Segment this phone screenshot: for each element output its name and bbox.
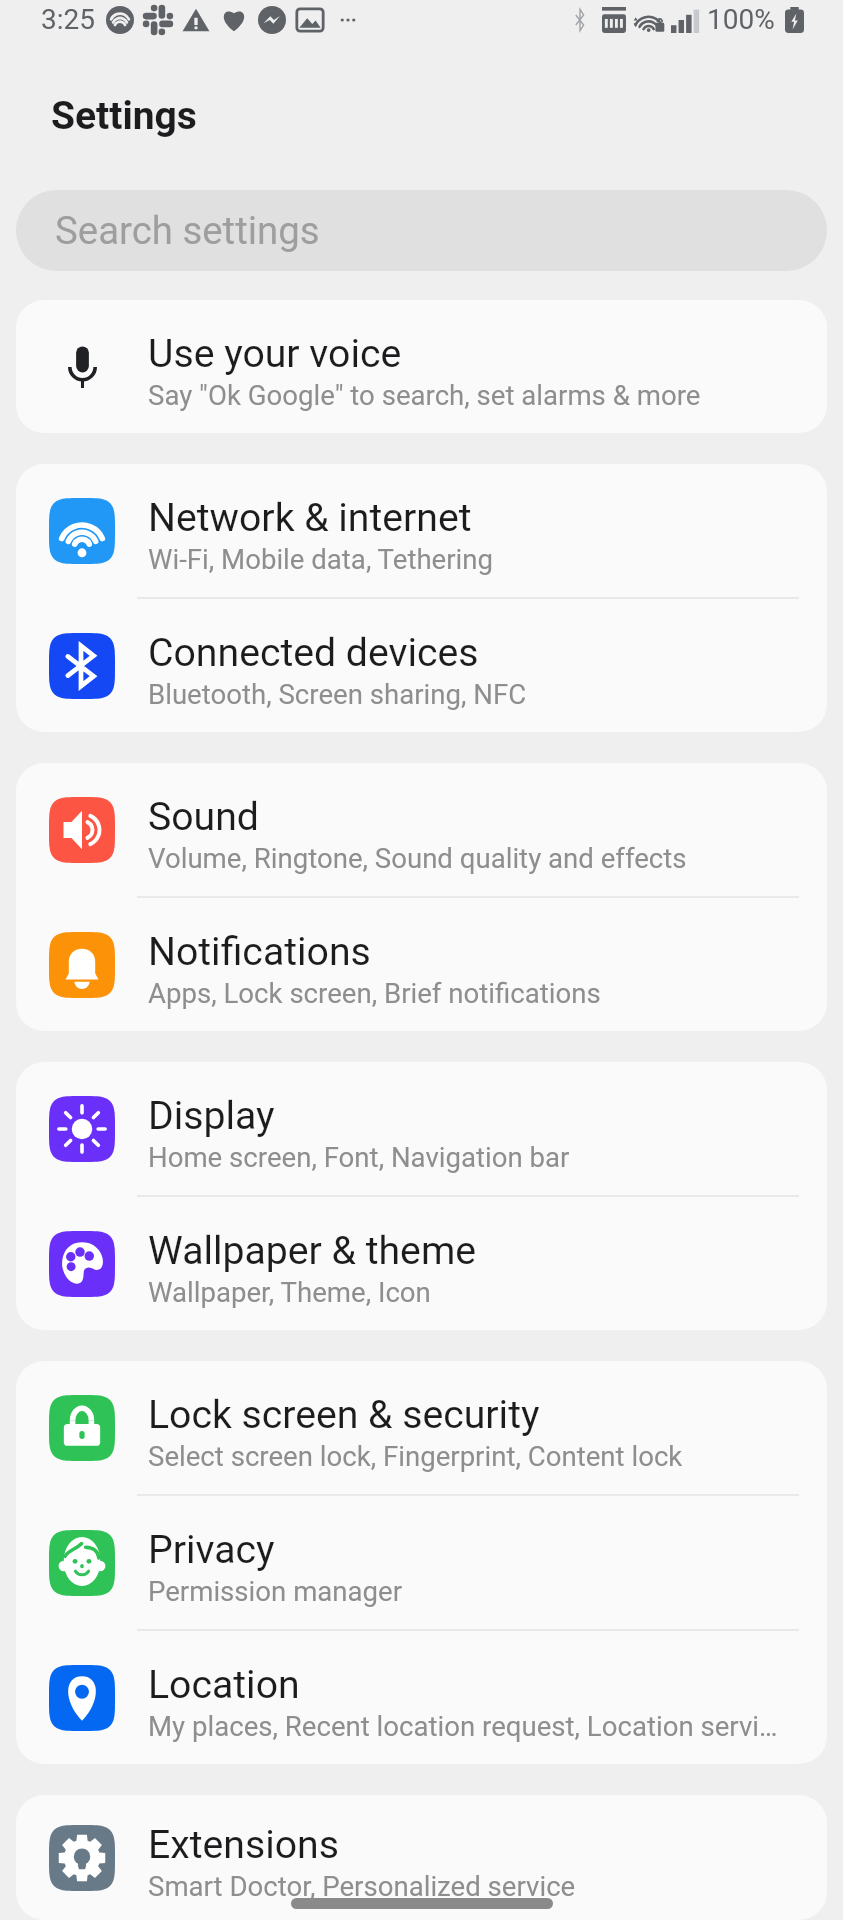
staticText: Select screen lock, Fingerprint, Content… — [148, 1440, 683, 1472]
staticText: Use your voice — [148, 331, 402, 377]
staticText: Display — [148, 1093, 275, 1139]
button[interactable]: Location — [16, 1631, 827, 1764]
staticText: Privacy — [148, 1527, 275, 1573]
staticText: Search settings — [55, 208, 320, 253]
staticText: Bluetooth, Screen sharing, NFC — [148, 678, 527, 710]
button[interactable]: Sound — [16, 763, 827, 896]
staticText: Network & internet — [148, 495, 472, 541]
button[interactable]: Network & internet — [16, 464, 827, 597]
staticText: Sound — [148, 794, 259, 840]
staticText: My places, Recent location request, Loca… — [148, 1710, 783, 1742]
staticText: Extensions — [148, 1822, 339, 1868]
button[interactable]: Connected devices — [16, 599, 827, 732]
button[interactable]: Use your voice — [16, 300, 827, 433]
staticText: Location — [148, 1662, 300, 1708]
staticText: Home screen, Font, Navigation bar — [148, 1141, 570, 1173]
button[interactable]: Privacy — [16, 1496, 827, 1629]
staticText: Smart Doctor, Personalized service — [148, 1870, 576, 1902]
button[interactable]: Wallpaper & theme — [16, 1197, 827, 1330]
staticText: Say "Ok Google" to search, set alarms & … — [148, 379, 701, 411]
staticText: Lock screen & security — [148, 1392, 540, 1438]
staticText: Volume, Ringtone, Sound quality and effe… — [148, 842, 687, 874]
button[interactable]: Extensions — [16, 1795, 827, 1920]
staticText: Notifications — [148, 929, 371, 975]
staticText: Connected devices — [148, 630, 479, 676]
staticText: 100% — [707, 3, 775, 36]
staticText: 3:25 — [41, 3, 95, 36]
staticText: Wallpaper, Theme, Icon — [148, 1276, 431, 1308]
button[interactable]: Notifications — [16, 898, 827, 1031]
staticText: Permission manager — [148, 1575, 403, 1607]
staticText: Apps, Lock screen, Brief notifications — [148, 977, 601, 1009]
button[interactable]: Lock screen & security — [16, 1361, 827, 1494]
staticText: Wi-Fi, Mobile data, Tethering — [148, 543, 494, 575]
staticText: Wallpaper & theme — [148, 1228, 477, 1274]
button[interactable]: Search settings — [16, 190, 827, 271]
staticText: Settings — [51, 93, 197, 139]
button[interactable]: Display — [16, 1062, 827, 1195]
